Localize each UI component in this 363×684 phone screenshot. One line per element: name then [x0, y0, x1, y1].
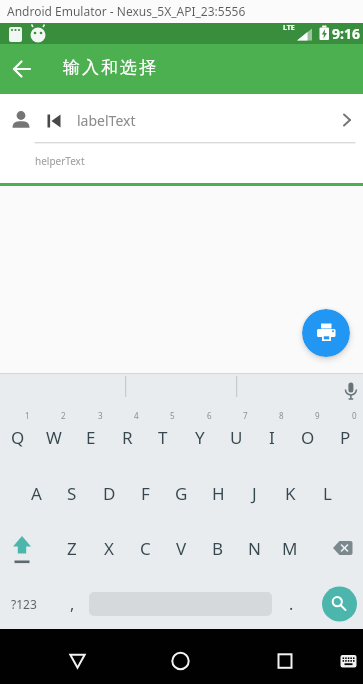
- staticText: 3: [98, 410, 103, 421]
- button[interactable]: [6, 54, 36, 84]
- staticText: W: [46, 426, 62, 449]
- button[interactable]: [166, 646, 196, 676]
- staticText: helperText: [35, 154, 85, 168]
- button[interactable]: E: [73, 410, 109, 464]
- staticText: Q: [11, 426, 25, 449]
- staticText: P: [340, 426, 351, 449]
- staticText: 1: [25, 410, 30, 421]
- staticText: 5: [170, 410, 175, 421]
- button[interactable]: Z: [54, 521, 90, 575]
- staticText: I: [269, 426, 275, 449]
- staticText: 8: [279, 410, 284, 421]
- button[interactable]: ?123: [2, 577, 46, 631]
- staticText: B: [212, 537, 224, 560]
- button[interactable]: T: [145, 410, 181, 464]
- staticText: 9:16: [332, 24, 360, 43]
- staticText: Y: [195, 426, 205, 449]
- button[interactable]: W: [36, 410, 72, 464]
- button[interactable]: P: [327, 410, 363, 464]
- staticText: 9: [315, 410, 320, 421]
- button[interactable]: I: [254, 410, 290, 464]
- staticText: .: [289, 593, 294, 615]
- button[interactable]: [63, 646, 93, 676]
- staticText: U: [230, 426, 243, 449]
- staticText: T: [158, 426, 168, 449]
- staticText: A: [31, 482, 42, 505]
- button[interactable]: F: [127, 466, 163, 520]
- button[interactable]: V: [163, 521, 199, 575]
- staticText: L: [323, 482, 332, 505]
- button[interactable]: [317, 581, 362, 626]
- button[interactable]: S: [54, 466, 90, 520]
- button[interactable]: L: [309, 466, 345, 520]
- staticText: ?123: [11, 596, 37, 612]
- staticText: labelText: [77, 111, 136, 130]
- staticText: C: [140, 537, 151, 560]
- staticText: F: [141, 482, 150, 505]
- button[interactable]: G: [163, 466, 199, 520]
- button[interactable]: [313, 521, 363, 575]
- staticText: G: [175, 482, 188, 505]
- button[interactable]: Y: [182, 410, 218, 464]
- staticText: R: [122, 426, 133, 449]
- button[interactable]: [0, 521, 50, 575]
- button[interactable]: [271, 646, 301, 676]
- staticText: 2: [61, 410, 66, 421]
- button[interactable]: .: [273, 577, 309, 631]
- staticText: O: [301, 426, 315, 449]
- button[interactable]: N: [236, 521, 272, 575]
- staticText: 7: [243, 410, 248, 421]
- button[interactable]: D: [91, 466, 127, 520]
- staticText: N: [248, 537, 261, 560]
- button[interactable]: J: [236, 466, 272, 520]
- staticText: 0: [352, 410, 357, 421]
- button[interactable]: R: [109, 410, 145, 464]
- button[interactable]: [333, 648, 361, 674]
- button[interactable]: H: [200, 466, 236, 520]
- button[interactable]: X: [91, 521, 127, 575]
- staticText: H: [212, 482, 225, 505]
- button[interactable]: A: [18, 466, 54, 520]
- staticText: Z: [67, 537, 77, 560]
- button[interactable]: O: [290, 410, 326, 464]
- staticText: 4: [134, 410, 139, 421]
- staticText: M: [282, 537, 298, 560]
- button[interactable]: U: [218, 410, 254, 464]
- staticText: 输入和选择: [62, 57, 157, 78]
- staticText: D: [103, 482, 116, 505]
- button[interactable]: C: [127, 521, 163, 575]
- button[interactable]: [336, 376, 363, 404]
- staticText: K: [285, 482, 296, 505]
- staticText: X: [104, 537, 114, 560]
- button[interactable]: M: [272, 521, 308, 575]
- button[interactable]: B: [200, 521, 236, 575]
- button[interactable]: [0, 100, 363, 142]
- staticText: LTE: [283, 23, 295, 33]
- button[interactable]: [302, 309, 350, 357]
- staticText: E: [86, 426, 96, 449]
- staticText: S: [67, 482, 77, 505]
- staticText: Android Emulator - Nexus_5X_API_23:5556: [7, 3, 246, 19]
- button[interactable]: K: [272, 466, 308, 520]
- staticText: 6: [207, 410, 212, 421]
- staticText: V: [176, 537, 187, 560]
- staticText: J: [252, 482, 257, 505]
- staticText: ,: [70, 593, 75, 615]
- button[interactable]: Q: [0, 410, 36, 464]
- button[interactable]: ,: [54, 577, 90, 631]
